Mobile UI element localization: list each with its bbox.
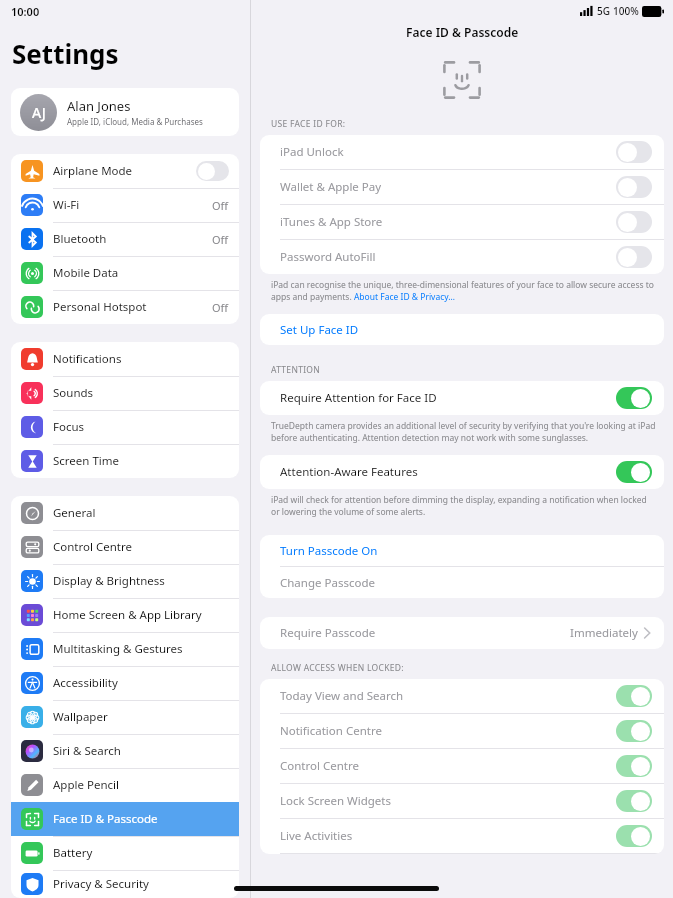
button[interactable]: Display & Brightness [11,564,239,598]
staticText: 5G [597,4,610,18]
staticText: Mobile Data [53,265,229,281]
button[interactable]: Off [616,176,652,198]
button[interactable]: Personal Hotspot [11,290,239,324]
staticText: Home Screen & App Library [53,607,229,623]
button[interactable]: On [616,387,652,409]
button[interactable]: Wallpaper [11,700,239,734]
staticText: Wi-Fi [53,197,212,213]
button[interactable]: Off [196,161,229,181]
staticText: Change Passcode [280,575,375,591]
button[interactable]: Notification Centre [260,714,664,748]
staticText: Alan Jones [67,97,131,115]
staticText: AJ [32,103,46,122]
staticText: Immediately [570,625,638,641]
staticText: Battery [53,845,229,861]
staticText: 100% [613,4,639,18]
staticText: Privacy & Security [53,876,229,892]
button[interactable]: On [616,790,652,812]
staticText: Apple ID, iCloud, Media & Purchases [67,116,203,127]
button[interactable]: Control Centre [11,530,239,564]
staticText: Notifications [53,351,229,367]
button[interactable]: Home Screen & App Library [11,598,239,632]
button[interactable]: Set Up Face ID [260,314,664,345]
staticText: Display & Brightness [53,573,229,589]
staticText: General [53,505,229,521]
staticText: Control Centre [280,758,616,774]
staticText: USE FACE ID FOR: [271,118,346,130]
button[interactable]: Password AutoFill [260,240,664,274]
staticText: 10:00 [11,4,40,19]
button[interactable]: Off [616,246,652,268]
staticText: Today View and Search [280,688,616,704]
staticText: Require Passcode [280,625,570,641]
staticText: Bluetooth [53,231,212,247]
button[interactable]: iPad Unlock [260,135,664,169]
button[interactable]: On [616,755,652,777]
button[interactable]: AJ [11,88,239,136]
button[interactable]: Sounds [11,376,239,410]
staticText: iPad Unlock [280,144,616,160]
staticText: Focus [53,419,229,435]
button[interactable]: Battery [11,836,239,870]
staticText: Airplane Mode [53,163,196,179]
staticText: Wallet & Apple Pay [280,179,616,195]
staticText: Off [212,232,229,247]
button[interactable]: On [616,720,652,742]
button[interactable]: Wi-Fi [11,188,239,222]
button[interactable]: Lock Screen Widgets [260,784,664,818]
button[interactable]: Face ID & Passcode [11,802,239,836]
button[interactable]: On [616,461,652,483]
button[interactable]: Change Passcode [260,567,664,598]
staticText: ATTENTION [271,364,321,376]
staticText: iTunes & App Store [280,214,616,230]
button[interactable]: Mobile Data [11,256,239,290]
staticText: TrueDepth camera provides an additional … [271,420,657,444]
button[interactable]: On [616,825,652,847]
button[interactable]: Siri & Search [11,734,239,768]
staticText: Password AutoFill [280,249,616,265]
staticText: ALLOW ACCESS WHEN LOCKED: [271,662,404,674]
staticText: Personal Hotspot [53,299,212,315]
staticText: Control Centre [53,539,229,555]
staticText: Off [212,300,229,315]
button[interactable]: Apple Pencil [11,768,239,802]
staticText: Lock Screen Widgets [280,793,616,809]
button[interactable]: Control Centre [260,749,664,783]
staticText: Notification Centre [280,723,616,739]
button[interactable]: Accessibility [11,666,239,700]
staticText: Settings [12,36,119,71]
staticText: Accessibility [53,675,229,691]
button[interactable]: Wallet & Apple Pay [260,170,664,204]
button[interactable]: Privacy & Security [11,870,239,898]
button[interactable]: Turn Passcode On [260,535,664,566]
staticText: Face ID & Passcode [406,24,519,40]
button[interactable]: Multitasking & Gestures [11,632,239,666]
button[interactable]: Require Attention for Face ID [260,381,664,415]
staticText: iPad will check for attention before dim… [271,494,657,518]
button[interactable]: Screen Time [11,444,239,478]
button[interactable]: Off [616,141,652,163]
staticText: Off [212,198,229,213]
staticText: Multitasking & Gestures [53,641,229,657]
staticText: Turn Passcode On [280,543,378,559]
button[interactable]: Bluetooth [11,222,239,256]
staticText: Siri & Search [53,743,229,759]
button[interactable]: Airplane Mode [11,154,239,188]
staticText: Sounds [53,385,229,401]
button[interactable]: On [616,685,652,707]
button[interactable]: Notifications [11,342,239,376]
button[interactable]: Live Activities [260,819,664,853]
button[interactable]: Attention-Aware Features [260,455,664,489]
button[interactable]: Today View and Search [260,679,664,713]
button[interactable]: Require Passcode [260,617,664,649]
staticText: iPad can recognise the unique, three-dim… [271,279,657,303]
staticText: Wallpaper [53,709,229,725]
button[interactable]: General [11,496,239,530]
button[interactable]: Focus [11,410,239,444]
button[interactable]: iTunes & App Store [260,205,664,239]
staticText: Screen Time [53,453,229,469]
button[interactable]: Off [616,211,652,233]
staticText: Require Attention for Face ID [280,390,616,406]
staticText: Face ID & Passcode [53,811,229,827]
staticText: Apple Pencil [53,777,229,793]
